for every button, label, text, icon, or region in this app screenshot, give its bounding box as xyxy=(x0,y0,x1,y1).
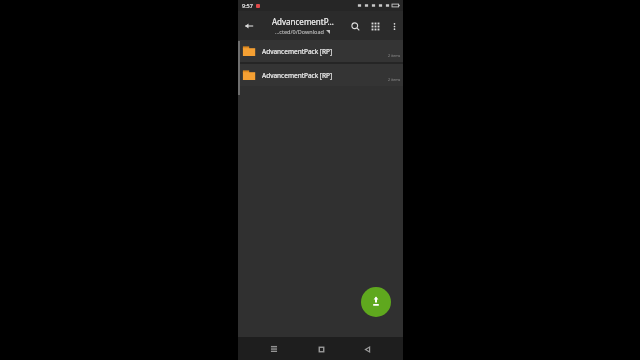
staticText: AdvancementPack [RP] xyxy=(262,47,388,56)
staticText: AdvancementP… xyxy=(272,16,334,27)
staticText: 9:57 xyxy=(242,2,253,9)
button[interactable]: AdvancementPack [RP] xyxy=(238,40,403,62)
staticText: 2 items xyxy=(388,77,401,82)
button[interactable]: View as grid xyxy=(365,16,385,36)
button[interactable]: AdvancementP… xyxy=(260,16,345,35)
button[interactable]: Download xyxy=(361,287,391,317)
button[interactable]: More options xyxy=(385,17,403,35)
button[interactable]: Home xyxy=(310,338,332,360)
button[interactable]: Back xyxy=(356,338,378,360)
staticText: …cted/0/Download xyxy=(275,28,324,35)
button[interactable]: AdvancementPack [RP] xyxy=(238,64,403,86)
staticText: 2 items xyxy=(388,53,401,58)
button[interactable]: Recent apps xyxy=(263,338,285,360)
button[interactable]: Search xyxy=(345,16,365,36)
button[interactable]: Back xyxy=(238,15,260,37)
staticText: AdvancementPack [RP] xyxy=(262,71,388,80)
